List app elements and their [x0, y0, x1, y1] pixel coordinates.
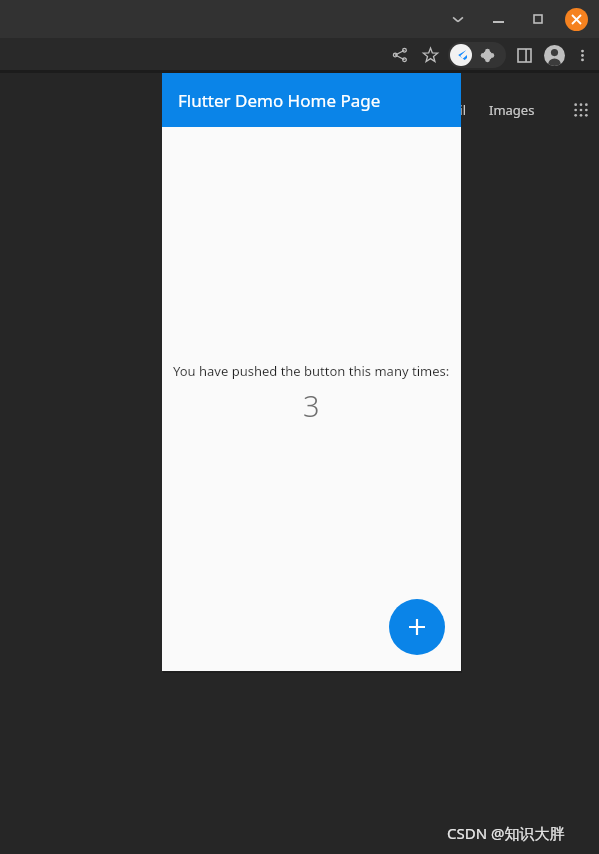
staticText: ail [452, 101, 467, 119]
button[interactable]: Customize and control [569, 42, 595, 68]
staticText: You have pushed the button this many tim… [173, 362, 450, 380]
button[interactable]: Maximize [521, 2, 555, 36]
button[interactable]: Increment [389, 599, 445, 655]
staticText: 3 [303, 386, 320, 425]
staticText: Images [489, 101, 535, 119]
button[interactable]: Flutter extension [448, 42, 474, 68]
button[interactable]: Images [489, 101, 535, 119]
button[interactable]: Google apps [567, 96, 595, 124]
button[interactable]: Share [385, 40, 415, 70]
button[interactable]: Profile [539, 40, 569, 70]
staticText: Flutter Demo Home Page [178, 89, 381, 112]
button[interactable]: Bookmark this tab [415, 40, 445, 70]
button[interactable]: ail [452, 101, 467, 119]
button[interactable]: Close [559, 2, 593, 36]
button[interactable]: Minimize [481, 2, 515, 36]
staticText: CSDN @知识大胖 [447, 823, 565, 843]
button[interactable]: Flutter Demo Home Page [162, 73, 461, 127]
button[interactable]: Extensions [474, 42, 500, 68]
button[interactable]: Side panel [509, 40, 539, 70]
button[interactable]: More window options [441, 2, 475, 36]
